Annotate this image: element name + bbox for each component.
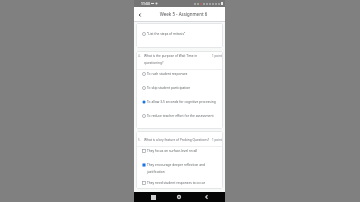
button[interactable]: To rush student responses [136,70,223,84]
staticText: 4. [138,54,141,58]
staticText: Week 5 - Assignment 6 [146,11,221,17]
staticText: “List the steps of mitosis” [147,32,220,36]
staticText: To rush student responses [147,72,220,76]
button[interactable]: To skip student participation [136,84,223,98]
staticText: What is a key feature of Probing Questio… [144,138,211,142]
button[interactable]: They encourage deeper reflection and jus… [136,161,223,179]
button[interactable]: “List the steps of mitosis” [136,30,223,48]
staticText: 5. [138,138,141,142]
staticText: To reduce teacher effort for the assessm… [147,114,220,118]
button[interactable]: Back [201,192,211,202]
staticText: They encourage deeper reflection and jus… [147,163,220,174]
button[interactable]: Home [174,192,184,202]
button[interactable]: Recents [148,192,158,202]
button[interactable]: They focus on surface-level recall [136,147,223,161]
staticText: 1 point [212,138,222,142]
staticText: To allow 3-5 seconds for cognitive proce… [147,100,220,104]
staticText: What is the purpose of Wait Time in ques… [144,54,211,65]
staticText: 11:04 [141,1,150,6]
button[interactable]: Back [134,7,146,21]
button[interactable]: To reduce teacher effort for the assessm… [136,112,223,126]
staticText: They focus on surface-level recall [147,149,220,153]
staticText: They need student responses to occur [147,181,220,185]
button[interactable]: To allow 3-5 seconds for cognitive proce… [136,98,223,112]
staticText: To skip student participation [147,86,220,90]
staticText: 1 point [212,54,222,58]
button[interactable]: They need student responses to occur [136,179,223,189]
